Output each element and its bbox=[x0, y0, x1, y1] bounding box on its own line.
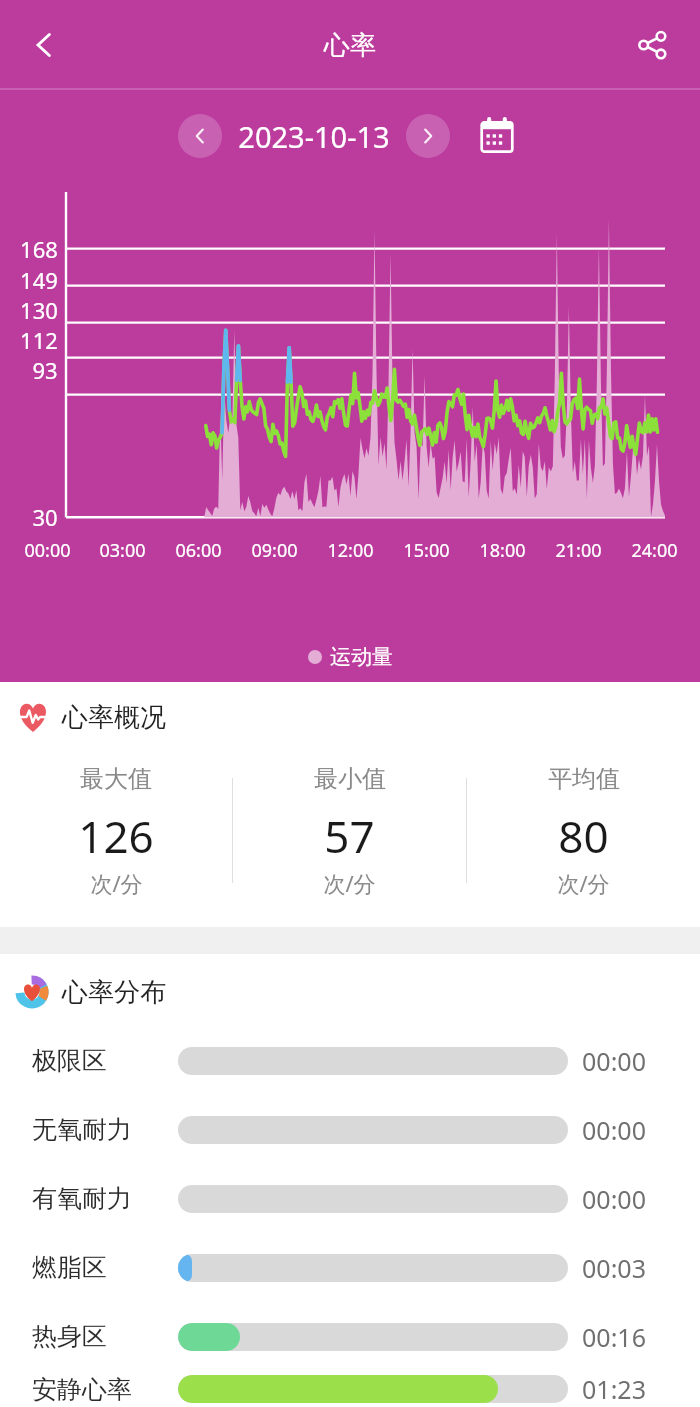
staticText: 149 bbox=[20, 265, 58, 295]
button[interactable]: 有氧耐力 bbox=[0, 1164, 700, 1233]
staticText: 最大值 bbox=[80, 764, 152, 794]
staticText: 00:00 bbox=[24, 538, 71, 563]
button[interactable]: 极限区 bbox=[0, 1026, 700, 1095]
button[interactable]: Next day bbox=[406, 114, 450, 158]
staticText: 最小值 bbox=[314, 764, 386, 794]
button[interactable]: Pick date bbox=[472, 111, 522, 161]
staticText: 00:00 bbox=[582, 1044, 646, 1078]
staticText: 00:16 bbox=[582, 1320, 646, 1354]
staticText: 00:00 bbox=[582, 1113, 646, 1147]
staticText: 次/分 bbox=[557, 868, 610, 898]
staticText: 80 bbox=[558, 806, 609, 866]
staticText: 24:00 bbox=[631, 538, 678, 563]
button[interactable]: Back bbox=[16, 17, 72, 73]
staticText: 130 bbox=[20, 295, 58, 325]
staticText: 极限区 bbox=[32, 1045, 107, 1076]
staticText: 15:00 bbox=[403, 538, 450, 563]
button[interactable]: 平均值 bbox=[467, 764, 700, 898]
button[interactable]: Share bbox=[624, 17, 680, 73]
button[interactable]: 安静心率 bbox=[0, 1371, 700, 1407]
staticText: 12:00 bbox=[327, 538, 374, 563]
staticText: 平均值 bbox=[548, 764, 620, 794]
staticText: 热身区 bbox=[32, 1321, 107, 1352]
staticText: 06:00 bbox=[175, 538, 222, 563]
staticText: 心率 bbox=[324, 29, 376, 62]
staticText: 安静心率 bbox=[32, 1374, 132, 1405]
button[interactable]: Previous day bbox=[178, 114, 222, 158]
button[interactable]: 燃脂区 bbox=[0, 1233, 700, 1302]
staticText: 93 bbox=[32, 355, 58, 385]
staticText: 燃脂区 bbox=[32, 1252, 107, 1283]
staticText: 30 bbox=[32, 502, 58, 532]
staticText: 09:00 bbox=[251, 538, 298, 563]
button[interactable]: 无氧耐力 bbox=[0, 1095, 700, 1164]
staticText: 运动量 bbox=[330, 644, 393, 670]
staticText: 00:00 bbox=[582, 1182, 646, 1216]
staticText: 00:03 bbox=[582, 1251, 646, 1285]
staticText: 次/分 bbox=[323, 868, 376, 898]
staticText: 2023-10-13 bbox=[238, 117, 390, 156]
staticText: 03:00 bbox=[99, 538, 146, 563]
staticText: 112 bbox=[20, 325, 58, 355]
staticText: 无氧耐力 bbox=[32, 1114, 132, 1145]
staticText: 21:00 bbox=[555, 538, 602, 563]
button[interactable]: 最大值 bbox=[0, 764, 232, 898]
staticText: 次/分 bbox=[90, 868, 143, 898]
staticText: 126 bbox=[78, 806, 154, 866]
staticText: 18:00 bbox=[479, 538, 526, 563]
staticText: 01:23 bbox=[582, 1372, 646, 1406]
button[interactable]: 热身区 bbox=[0, 1302, 700, 1371]
staticText: 有氧耐力 bbox=[32, 1183, 132, 1214]
staticText: 心率分布 bbox=[62, 976, 166, 1009]
staticText: 心率概况 bbox=[62, 701, 166, 734]
button[interactable]: 最小值 bbox=[233, 764, 466, 898]
staticText: 168 bbox=[20, 234, 58, 264]
staticText: 57 bbox=[324, 806, 375, 866]
